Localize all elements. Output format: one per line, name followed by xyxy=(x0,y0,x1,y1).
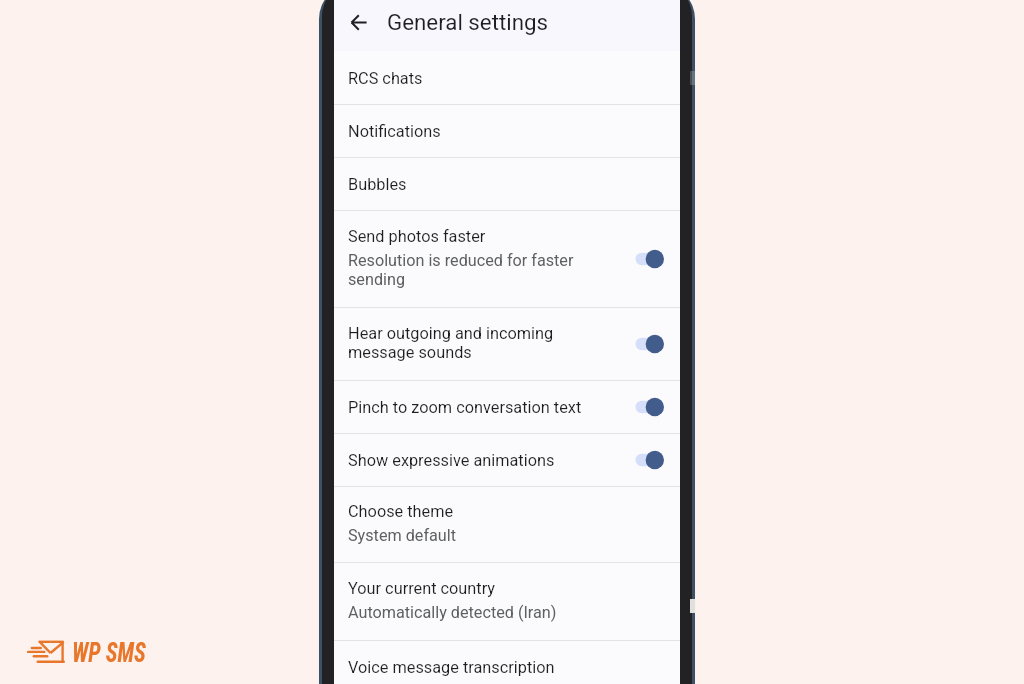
button[interactable]: Show expressive animations xyxy=(334,434,680,487)
button[interactable]: Toggle xyxy=(622,392,664,422)
button[interactable]: Toggle xyxy=(622,244,664,274)
button[interactable]: Send photos faster xyxy=(334,211,680,308)
staticText: Notifications xyxy=(348,122,441,141)
staticText: Voice message transcription xyxy=(348,658,555,677)
staticText: Pinch to zoom conversation text xyxy=(348,398,582,417)
button[interactable]: Your current country xyxy=(334,563,680,641)
button[interactable]: WP SMS xyxy=(28,637,153,669)
staticText: RCS chats xyxy=(348,69,423,88)
staticText: Hear outgoing and incoming message sound… xyxy=(348,324,613,362)
staticText: Automatically detected (Iran) xyxy=(348,603,557,622)
button[interactable]: Hear outgoing and incoming message sound… xyxy=(334,308,680,381)
staticText: Send photos faster xyxy=(348,227,486,246)
button[interactable]: Back xyxy=(340,3,378,41)
staticText: Bubbles xyxy=(348,175,407,194)
staticText: Show expressive animations xyxy=(348,451,555,470)
button[interactable]: Bubbles xyxy=(334,158,680,211)
button[interactable]: RCS chats xyxy=(334,51,680,105)
button[interactable]: Toggle xyxy=(622,445,664,475)
button[interactable]: Toggle xyxy=(622,329,664,359)
staticText: General settings xyxy=(387,9,549,35)
staticText: Choose theme xyxy=(348,502,454,521)
button[interactable]: Voice message transcription xyxy=(334,641,680,684)
staticText: System default xyxy=(348,526,457,545)
button[interactable]: Pinch to zoom conversation text xyxy=(334,381,680,434)
staticText: Your current country xyxy=(348,579,496,598)
button[interactable]: Choose theme xyxy=(334,487,680,563)
staticText: Resolution is reduced for faster sending xyxy=(348,251,613,289)
button[interactable]: Notifications xyxy=(334,105,680,158)
staticText: WP SMS xyxy=(72,637,146,669)
